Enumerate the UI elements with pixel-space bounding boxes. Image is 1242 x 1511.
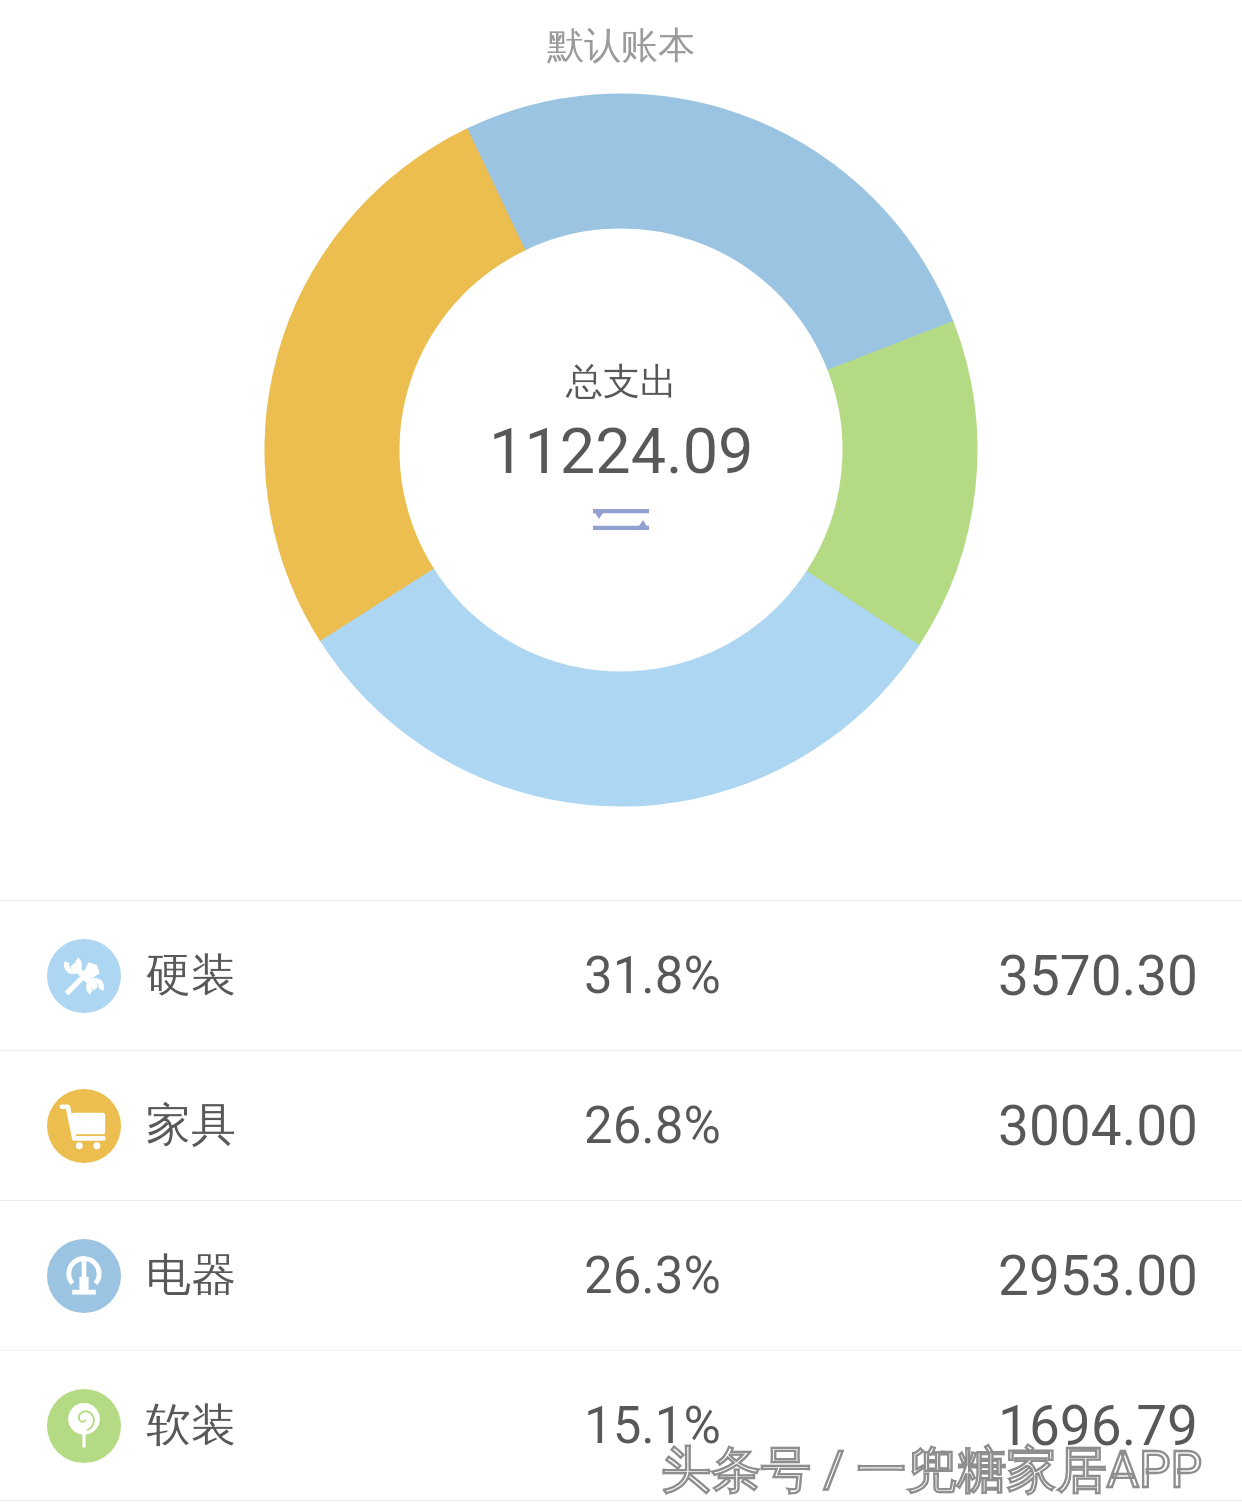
staticText: 总支出: [566, 358, 677, 405]
staticText: 1696.79: [998, 1394, 1198, 1458]
button[interactable]: Switch chart type: [593, 509, 649, 530]
staticText: 26.3%: [584, 1246, 721, 1306]
button[interactable]: 电器: [0, 1201, 1242, 1350]
button[interactable]: 家具: [0, 1051, 1242, 1200]
button[interactable]: 默认账本: [529, 12, 713, 79]
staticText: 电器: [146, 1247, 236, 1304]
staticText: 头条号 / 一兜糖家居APP: [661, 1439, 1203, 1502]
staticText: 26.8%: [584, 1096, 721, 1156]
staticText: 默认账本: [547, 22, 695, 69]
staticText: 3004.00: [998, 1094, 1198, 1158]
staticText: 3570.30: [998, 944, 1198, 1008]
staticText: 软装: [146, 1397, 236, 1454]
button[interactable]: 硬装: [0, 901, 1242, 1050]
staticText: 2953.00: [998, 1244, 1198, 1308]
staticText: 15.1%: [584, 1396, 721, 1456]
staticText: 家具: [146, 1097, 236, 1154]
staticText: 11224.09: [489, 415, 754, 489]
button[interactable]: 软装: [0, 1351, 1242, 1500]
staticText: 硬装: [146, 947, 236, 1004]
staticText: 31.8%: [584, 946, 721, 1006]
